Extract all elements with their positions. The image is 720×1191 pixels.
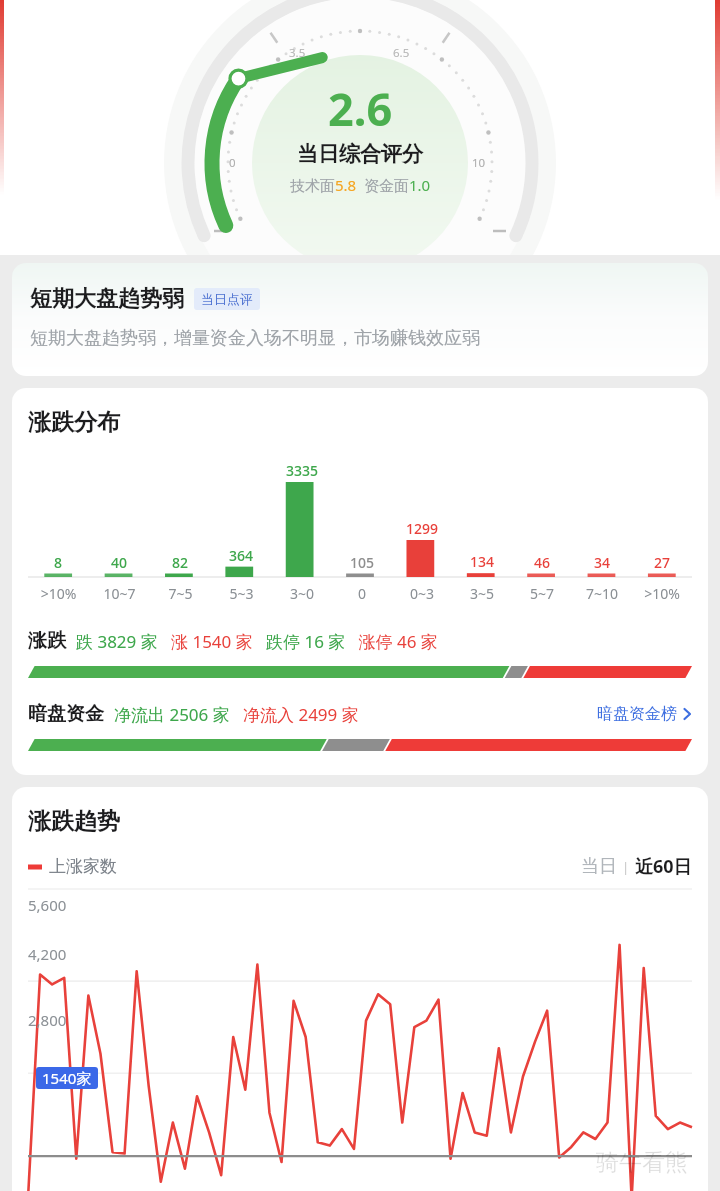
staticText: 暗盘资金榜 [597,704,677,724]
staticText: 0 [332,584,392,603]
staticText: 3.5 [289,45,306,61]
button[interactable]: 涨跌 [28,629,692,653]
staticText: 跌 3829 家 涨 1540 家 跌停 16 家 涨停 46 家 [76,630,438,653]
staticText: 0 [229,155,236,171]
staticText: 1540家 [42,1068,92,1088]
staticText: 8 [54,553,63,572]
staticText: 当日点评 [201,291,253,307]
staticText: 40 [111,553,128,572]
staticText: 34 [594,553,611,572]
staticText: 364 [229,546,254,565]
staticText: 3~0 [272,584,332,603]
staticText: 骑牛看熊 [596,1148,688,1177]
staticText: 短期大盘趋势弱，增量资金入场不明显，市场赚钱效应弱 [30,327,480,350]
staticText: 1299 [406,519,439,538]
staticText: 涨跌趋势 [28,807,120,836]
staticText: 暗盘资金 [28,702,104,726]
staticText: 5~7 [512,584,572,603]
staticText: 2.6 [328,78,393,139]
staticText: 105 [350,553,375,572]
staticText: 涨跌 [28,629,66,653]
staticText: 短期大盘趋势弱 [30,285,184,313]
staticText: 0~3 [392,584,452,603]
staticText: 净流出 2506 家 净流入 2499 家 [114,703,359,726]
staticText: 4,200 [28,944,67,964]
staticText: 7~5 [150,584,211,603]
staticText: 134 [470,552,495,571]
button[interactable]: 暗盘资金 [28,702,692,726]
button[interactable]: 当日 [581,854,692,879]
staticText: 涨跌分布 [28,408,120,437]
button[interactable]: 短期大盘趋势弱 [12,263,708,376]
staticText: 27 [654,553,671,572]
staticText: 2,800 [28,1010,67,1030]
staticText: | [622,858,630,876]
staticText: 10~7 [89,584,150,603]
staticText: >10% [632,584,692,603]
other: More [682,709,692,719]
staticText: 当日 [581,855,617,878]
staticText: 当日综合评分 [297,141,423,167]
staticText: 82 [172,553,189,572]
staticText: 10 [472,155,486,171]
staticText: 技术面5.8 资金面1.0 [290,175,431,195]
staticText: 7~10 [572,584,632,603]
staticText: 5~3 [211,584,272,603]
staticText: 上涨家数 [49,856,117,877]
staticText: 近60日 [635,854,692,879]
staticText: 3335 [286,461,319,480]
staticText: 46 [534,553,551,572]
staticText: 3~5 [452,584,512,603]
staticText: >10% [28,584,89,603]
staticText: 6.5 [393,45,410,61]
staticText: 5,600 [28,895,67,915]
